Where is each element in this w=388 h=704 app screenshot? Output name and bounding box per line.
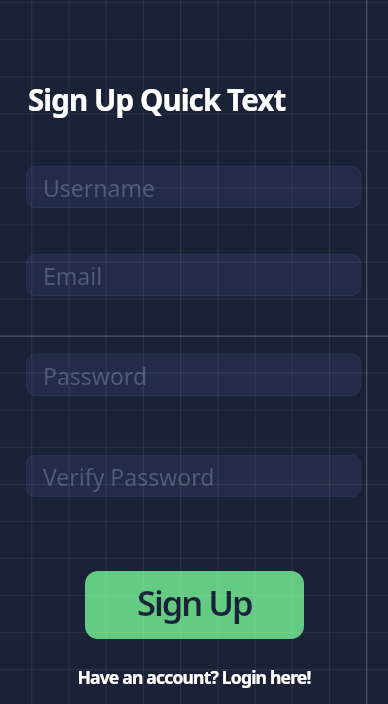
staticText: Sign Up bbox=[137, 579, 252, 626]
button[interactable]: Have an account? Login here! bbox=[0, 665, 388, 689]
staticText: Sign Up Quick Text bbox=[28, 79, 286, 119]
button[interactable]: Verify Password bbox=[26, 455, 361, 497]
staticText: Verify Password bbox=[43, 461, 215, 492]
staticText: Have an account? Login here! bbox=[77, 665, 311, 689]
button[interactable]: Username bbox=[26, 166, 361, 208]
staticText: Password bbox=[43, 360, 148, 391]
staticText: Email bbox=[43, 260, 103, 291]
button[interactable]: Email bbox=[26, 254, 361, 296]
button[interactable]: Sign Up bbox=[85, 571, 304, 639]
staticText: Username bbox=[43, 172, 155, 203]
button[interactable]: Password bbox=[26, 354, 361, 396]
